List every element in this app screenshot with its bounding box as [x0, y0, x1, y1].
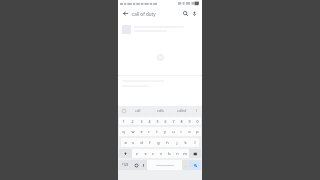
- staticText: 9: [188, 119, 191, 124]
- button[interactable]: 0: [193, 117, 201, 125]
- button[interactable]: g: [154, 138, 163, 147]
- button[interactable]: t: [153, 127, 161, 136]
- staticText: f: [149, 140, 151, 145]
- button[interactable]: 8: [177, 117, 185, 125]
- button[interactable]: Google: [120, 107, 127, 114]
- button[interactable]: m: [181, 149, 189, 158]
- button[interactable]: 7: [169, 117, 177, 125]
- button[interactable]: o: [185, 127, 193, 136]
- staticText: t: [156, 129, 158, 134]
- button[interactable]: k: [181, 138, 190, 147]
- button[interactable]: Shift: [119, 149, 132, 158]
- button[interactable]: u: [169, 127, 177, 136]
- staticText: q: [122, 129, 125, 134]
- staticText: e: [140, 129, 143, 134]
- staticText: 7: [172, 119, 175, 124]
- staticText: call of duty: [132, 11, 156, 17]
- staticText: k: [184, 140, 187, 145]
- staticText: .: [185, 163, 186, 168]
- button[interactable]: 5: [153, 117, 161, 125]
- button[interactable]: s: [129, 138, 137, 147]
- button[interactable]: c: [149, 149, 157, 158]
- button[interactable]: [118, 22, 202, 36]
- button[interactable]: 9: [185, 117, 193, 125]
- button[interactable]: v: [157, 149, 165, 158]
- button[interactable]: Backspace: [189, 149, 201, 158]
- button[interactable]: call: [127, 106, 149, 115]
- staticText: v: [160, 151, 162, 156]
- staticText: g: [157, 140, 160, 145]
- button[interactable]: Search: [189, 160, 201, 170]
- staticText: c: [152, 151, 154, 156]
- button[interactable]: called: [171, 106, 193, 115]
- staticText: 2: [131, 119, 134, 124]
- staticText: i: [180, 129, 182, 134]
- staticText: called: [177, 108, 187, 113]
- button[interactable]: y: [161, 127, 169, 136]
- staticText: ?123: [122, 163, 129, 167]
- button[interactable]: Search: [181, 9, 190, 18]
- staticText: m: [183, 151, 187, 156]
- staticText: 6: [164, 119, 167, 124]
- staticText: p: [196, 129, 199, 134]
- button[interactable]: 4: [145, 117, 153, 125]
- button[interactable]: Emoji: [132, 160, 140, 170]
- button[interactable]: x: [141, 149, 149, 158]
- button[interactable]: Voice search: [190, 9, 199, 18]
- button[interactable]: l: [190, 138, 199, 147]
- staticText: calls: [157, 108, 164, 113]
- staticText: a: [124, 140, 127, 145]
- staticText: 0: [196, 119, 199, 124]
- button[interactable]: 1: [119, 117, 128, 125]
- button[interactable]: q: [119, 127, 128, 136]
- button[interactable]: Space: [147, 160, 182, 170]
- staticText: s: [132, 140, 134, 145]
- button[interactable]: w: [128, 127, 137, 136]
- button[interactable]: h: [163, 138, 172, 147]
- button[interactable]: calls: [149, 106, 171, 115]
- staticText: z: [136, 151, 138, 156]
- staticText: x: [144, 151, 147, 156]
- staticText: 1: [122, 119, 125, 124]
- staticText: w: [131, 129, 135, 134]
- button[interactable]: ?123: [119, 160, 132, 170]
- button[interactable]: f: [145, 138, 154, 147]
- button[interactable]: 3: [137, 117, 145, 125]
- staticText: 5: [156, 119, 159, 124]
- button[interactable]: b: [165, 149, 173, 158]
- staticText: u: [172, 129, 175, 134]
- button[interactable]: Back: [121, 9, 130, 18]
- staticText: 3: [140, 119, 143, 124]
- staticText: y: [164, 129, 166, 134]
- staticText: n: [176, 151, 179, 156]
- button[interactable]: i: [177, 127, 185, 136]
- button[interactable]: 2: [128, 117, 137, 125]
- button[interactable]: p: [193, 127, 201, 136]
- staticText: 8: [180, 119, 183, 124]
- staticText: call: [135, 108, 141, 113]
- button[interactable]: 6: [161, 117, 169, 125]
- staticText: o: [188, 129, 191, 134]
- staticText: b: [168, 151, 171, 156]
- button[interactable]: Voice input: [140, 160, 147, 170]
- button[interactable]: n: [173, 149, 181, 158]
- button[interactable]: z: [132, 149, 141, 158]
- button[interactable]: r: [145, 127, 153, 136]
- button[interactable]: a: [121, 138, 129, 147]
- button[interactable]: j: [172, 138, 181, 147]
- button[interactable]: More options: [193, 107, 200, 114]
- staticText: j: [176, 140, 178, 145]
- button[interactable]: d: [137, 138, 145, 147]
- staticText: d: [140, 140, 143, 145]
- staticText: h: [166, 140, 169, 145]
- button[interactable]: e: [137, 127, 145, 136]
- staticText: l: [194, 140, 196, 145]
- staticText: r: [148, 129, 150, 134]
- staticText: 4: [148, 119, 151, 124]
